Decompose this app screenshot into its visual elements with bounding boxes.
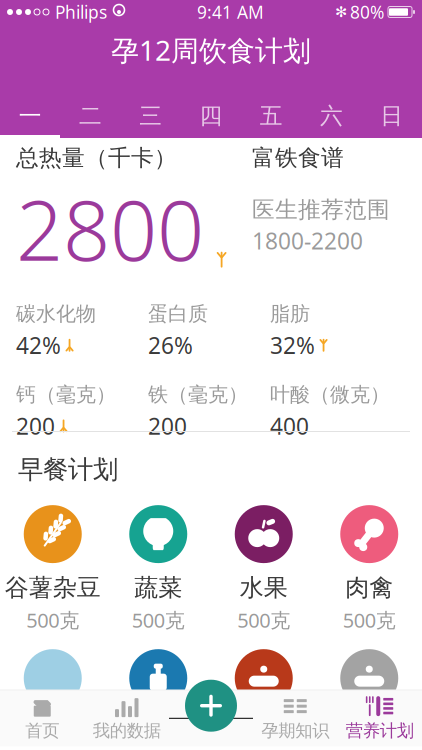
staticText: 脂肪	[270, 302, 310, 326]
staticText: 碳水化物	[16, 302, 96, 326]
button[interactable]: Add	[185, 680, 237, 732]
button[interactable]: 五	[241, 94, 301, 138]
staticText: 总热量（千卡）	[16, 144, 177, 172]
button[interactable]: 营养计划	[337, 693, 422, 743]
button[interactable]: Food category	[316, 649, 422, 707]
staticText: 谷薯杂豆	[5, 573, 101, 603]
button[interactable]: 水果	[211, 505, 316, 633]
staticText: 营养计划	[346, 720, 414, 741]
staticText: 500克	[132, 607, 185, 633]
button[interactable]: Food category	[211, 649, 316, 707]
staticText: 日	[380, 102, 403, 130]
staticText: 一	[19, 102, 42, 130]
button[interactable]: 蔬菜	[105, 505, 211, 633]
button[interactable]: 日	[362, 94, 422, 138]
button[interactable]: 二	[60, 94, 121, 138]
staticText: 三	[139, 102, 162, 130]
button[interactable]: 谷薯杂豆	[0, 505, 105, 633]
button[interactable]: Food category	[0, 649, 105, 707]
staticText: 钙（毫克）	[16, 382, 116, 407]
staticText: 32%	[270, 330, 315, 360]
staticText: 肉禽	[345, 573, 393, 603]
staticText: 9:41 AM	[197, 0, 264, 23]
button[interactable]: 肉禽	[316, 505, 422, 633]
staticText: 孕期知识	[261, 720, 329, 741]
staticText: 五	[260, 102, 283, 130]
button[interactable]: 一	[0, 94, 60, 138]
staticText: 四	[199, 102, 222, 130]
staticText: 500克	[343, 607, 396, 633]
staticText: 400	[270, 411, 309, 441]
staticText: 我的数据	[93, 720, 161, 741]
button[interactable]: 孕期知识	[253, 693, 337, 743]
staticText: 二	[79, 102, 102, 130]
staticText: Philips	[55, 0, 107, 23]
button[interactable]: 首页	[0, 693, 84, 743]
staticText: 六	[320, 102, 343, 130]
staticText: 1800-2200	[252, 226, 363, 256]
staticText: 蛋白质	[148, 302, 208, 326]
staticText: 叶酸（微克）	[270, 382, 390, 407]
staticText: 26%	[148, 330, 193, 360]
staticText: 80%	[350, 0, 384, 23]
staticText: 富铁食谱	[252, 144, 344, 172]
staticText: 医生推荐范围	[252, 196, 390, 224]
button[interactable]: 三	[121, 94, 181, 138]
staticText: 首页	[25, 720, 59, 741]
staticText: ✻	[335, 4, 347, 20]
staticText: 500克	[26, 607, 79, 633]
button[interactable]: 四	[181, 94, 241, 138]
staticText: 200	[148, 411, 187, 441]
staticText: 42%	[16, 330, 61, 360]
staticText: 孕12周饮食计划	[111, 31, 311, 69]
staticText: 200	[16, 411, 55, 441]
staticText: 蔬菜	[134, 573, 182, 603]
staticText: 水果	[240, 573, 288, 603]
button[interactable]: 我的数据	[84, 693, 169, 743]
staticText: 铁（毫克）	[148, 382, 248, 407]
button[interactable]: Food category	[105, 649, 211, 707]
staticText: 2800	[16, 174, 204, 284]
staticText: 500克	[237, 607, 290, 633]
button[interactable]: 六	[301, 94, 362, 138]
staticText: 早餐计划	[18, 454, 118, 485]
